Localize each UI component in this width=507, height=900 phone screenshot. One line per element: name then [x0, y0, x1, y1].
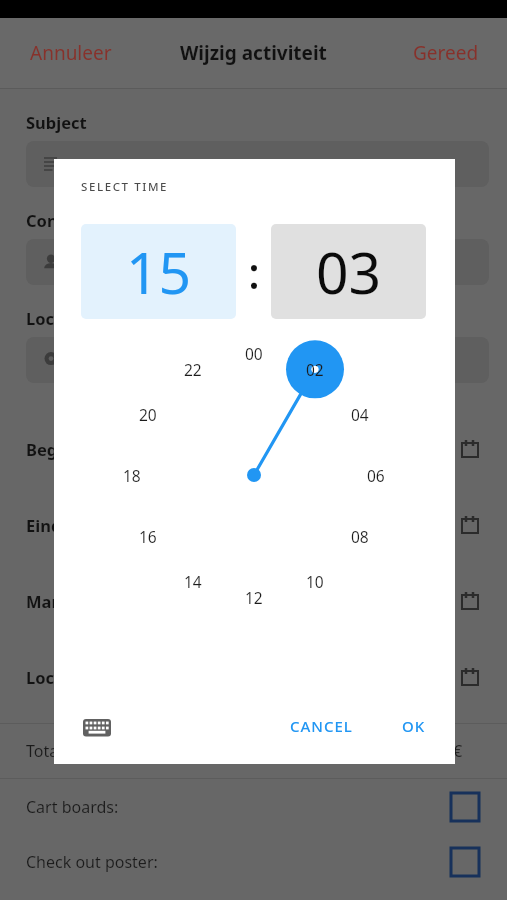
other: Calendar	[461, 667, 481, 687]
button[interactable]: 02	[297, 358, 333, 380]
staticText: 16	[139, 526, 157, 547]
staticText: SELECT TIME	[81, 179, 169, 195]
staticText: Annuleer	[30, 40, 112, 66]
button[interactable]: 00	[236, 342, 272, 364]
staticText: 02	[306, 359, 324, 380]
staticText: 12	[245, 587, 263, 608]
button[interactable]: Switch to keyboard input	[80, 711, 114, 745]
staticText: 08	[351, 526, 369, 547]
staticText: :	[248, 242, 260, 302]
button[interactable]: 10	[297, 570, 333, 592]
staticText: Locatie	[26, 666, 86, 688]
other: Calendar	[461, 439, 481, 459]
button[interactable]: 15	[81, 224, 236, 319]
button[interactable]: 08	[342, 525, 378, 547]
staticText: 14	[184, 571, 202, 592]
staticText: Cart boards:	[26, 796, 119, 818]
staticText: Wijzig activiteit	[180, 40, 327, 66]
staticText: Manager	[26, 590, 100, 612]
button[interactable]: Manager	[26, 563, 481, 639]
staticText: 03	[316, 233, 382, 311]
button[interactable]	[26, 141, 489, 187]
button[interactable]: Cart boards:	[0, 779, 507, 834]
staticText: 18	[123, 465, 141, 486]
button[interactable]: 12	[236, 586, 272, 608]
staticText: €	[453, 740, 463, 762]
other: Calendar	[461, 591, 481, 611]
staticText: 10	[306, 571, 324, 592]
button[interactable]: 18	[114, 464, 150, 486]
staticText: 06	[367, 465, 385, 486]
button[interactable]: 22	[175, 358, 211, 380]
button[interactable]: 06	[358, 464, 394, 486]
staticText: Subject	[26, 111, 87, 133]
staticText: Locatie	[26, 307, 86, 329]
button[interactable]: 03	[271, 224, 426, 319]
staticText: CANCEL	[290, 716, 353, 736]
staticText: Einddatum	[26, 514, 116, 536]
staticText: 20	[139, 404, 157, 425]
button[interactable]: OK	[388, 704, 440, 748]
button[interactable]: Check out poster:	[0, 834, 507, 889]
other: Calendar	[461, 515, 481, 535]
staticText: 00	[245, 343, 263, 364]
staticText: Gereed	[413, 40, 479, 66]
button[interactable]: 14	[175, 570, 211, 592]
staticText: Contactpersoon	[26, 209, 158, 231]
button[interactable]: 16	[130, 525, 166, 547]
button[interactable]: Locatie	[26, 639, 481, 715]
staticText: 04	[351, 404, 369, 425]
button[interactable]	[26, 337, 489, 383]
button[interactable]	[26, 239, 489, 285]
button[interactable]: CANCEL	[276, 704, 367, 748]
button[interactable]: Einddatum	[26, 487, 481, 563]
button[interactable]: 04	[342, 403, 378, 425]
button[interactable]: Begindatum	[26, 411, 481, 487]
staticText: 22	[184, 359, 202, 380]
button[interactable]: Gereed	[385, 30, 507, 76]
staticText: Check out poster:	[26, 851, 158, 873]
staticText: OK	[402, 716, 426, 736]
button[interactable]: Annuleer	[0, 30, 142, 76]
staticText: Begindatum	[26, 438, 128, 460]
staticText: Totale omzet:	[26, 740, 127, 762]
staticText: 15	[126, 233, 192, 311]
button[interactable]: 20	[130, 403, 166, 425]
